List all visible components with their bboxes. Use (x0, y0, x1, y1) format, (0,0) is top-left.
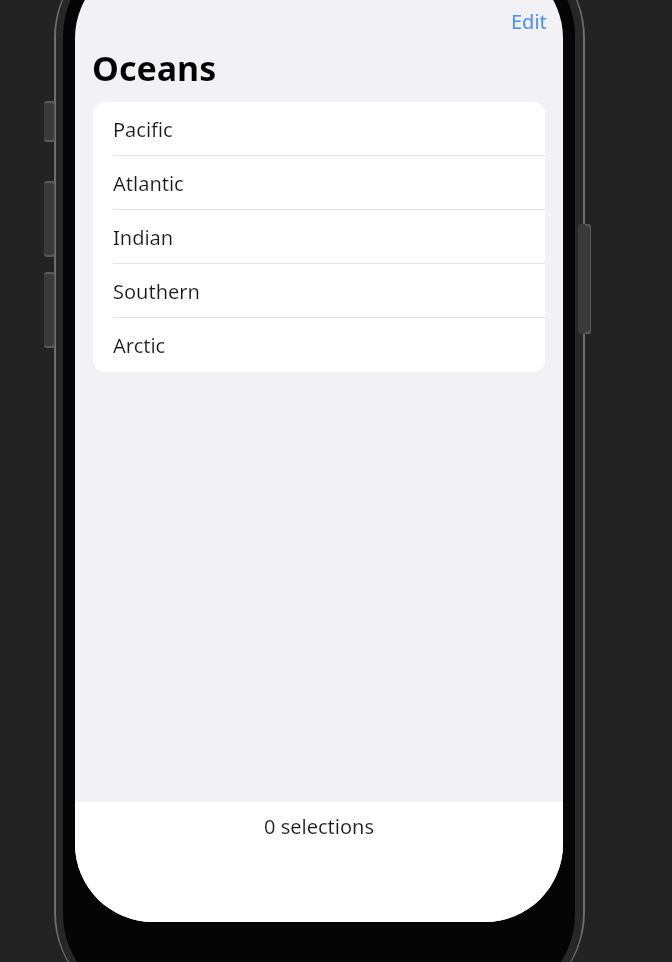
button[interactable]: Atlantic (93, 156, 545, 210)
staticText: Pacific (113, 116, 173, 143)
button[interactable]: Indian (93, 210, 545, 264)
staticText: Atlantic (113, 170, 184, 197)
staticText: Edit (511, 8, 547, 35)
staticText: Indian (113, 224, 174, 251)
staticText: Southern (113, 278, 200, 305)
staticText: 0 selections (264, 813, 374, 840)
staticText: Oceans (92, 45, 217, 91)
staticText: Arctic (113, 332, 166, 359)
button[interactable]: Edit (501, 4, 557, 39)
button[interactable]: Pacific (93, 102, 545, 156)
button[interactable]: Southern (93, 264, 545, 318)
button[interactable]: Arctic (93, 318, 545, 372)
